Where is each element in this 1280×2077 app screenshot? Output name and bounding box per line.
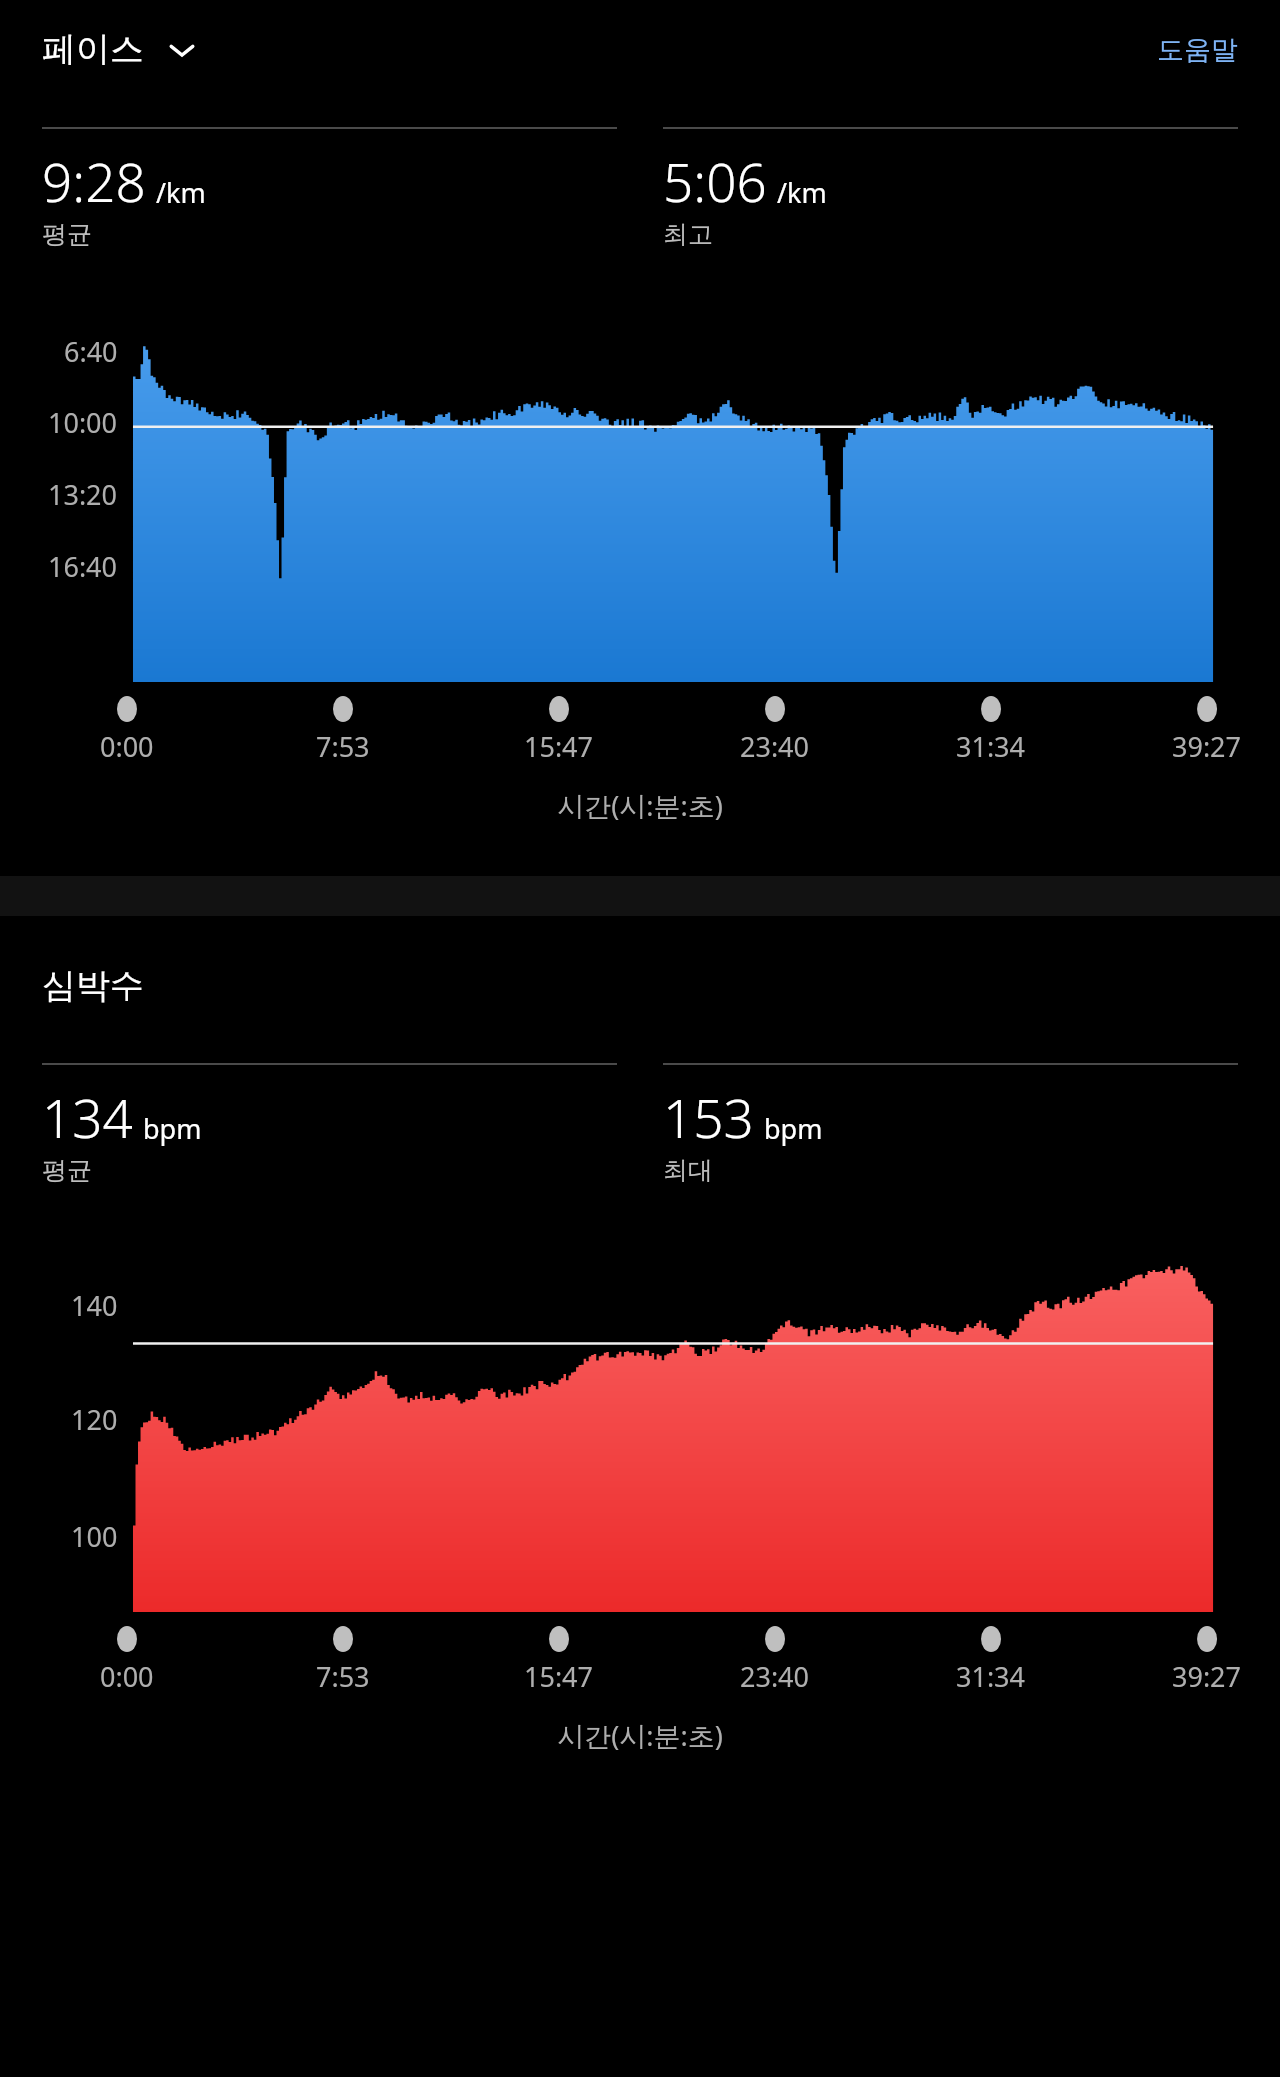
staticText: 31:34 (956, 728, 1026, 765)
staticText: 페이스 (42, 28, 144, 71)
staticText: 5:06 (663, 145, 767, 217)
staticText: 10:00 (48, 404, 118, 441)
staticText: 153 (663, 1081, 754, 1153)
button[interactable]: 9:28 (42, 127, 617, 250)
staticText: 13:20 (48, 476, 118, 513)
staticText: 134 (42, 1081, 133, 1153)
staticText: 9:28 (42, 145, 146, 217)
staticText: 도움말 (1157, 33, 1238, 67)
staticText: 평균 (42, 1155, 92, 1186)
staticText: /km (777, 174, 827, 211)
staticText: bpm (143, 1110, 202, 1147)
button[interactable]: 도움말 (1157, 33, 1238, 67)
staticText: 시간(시:분:초) (0, 1717, 1280, 1754)
button[interactable]: 153 (663, 1063, 1238, 1186)
staticText: 시간(시:분:초) (0, 787, 1280, 824)
button[interactable]: 134 (42, 1063, 617, 1186)
staticText: 23:40 (740, 1658, 810, 1695)
staticText: 39:27 (1172, 1658, 1242, 1695)
staticText: 120 (71, 1401, 118, 1438)
staticText: /km (156, 174, 206, 211)
staticText: 평균 (42, 219, 92, 250)
staticText: 100 (71, 1518, 118, 1555)
staticText: 6:40 (64, 333, 118, 370)
staticText: 31:34 (956, 1658, 1026, 1695)
staticText: 최대 (663, 1155, 713, 1186)
staticText: 최고 (663, 219, 713, 250)
staticText: 7:53 (316, 1658, 370, 1695)
button[interactable]: 페이스 (42, 28, 200, 71)
staticText: 15:47 (524, 728, 594, 765)
staticText: 140 (71, 1287, 118, 1324)
staticText: 심박수 (42, 964, 144, 1007)
staticText: 23:40 (740, 728, 810, 765)
staticText: 15:47 (524, 1658, 594, 1695)
staticText: bpm (764, 1110, 823, 1147)
staticText: 7:53 (316, 728, 370, 765)
staticText: 0:00 (100, 728, 154, 765)
staticText: 16:40 (48, 548, 118, 585)
staticText: 39:27 (1172, 728, 1242, 765)
button[interactable]: 5:06 (663, 127, 1238, 250)
staticText: 0:00 (100, 1658, 154, 1695)
